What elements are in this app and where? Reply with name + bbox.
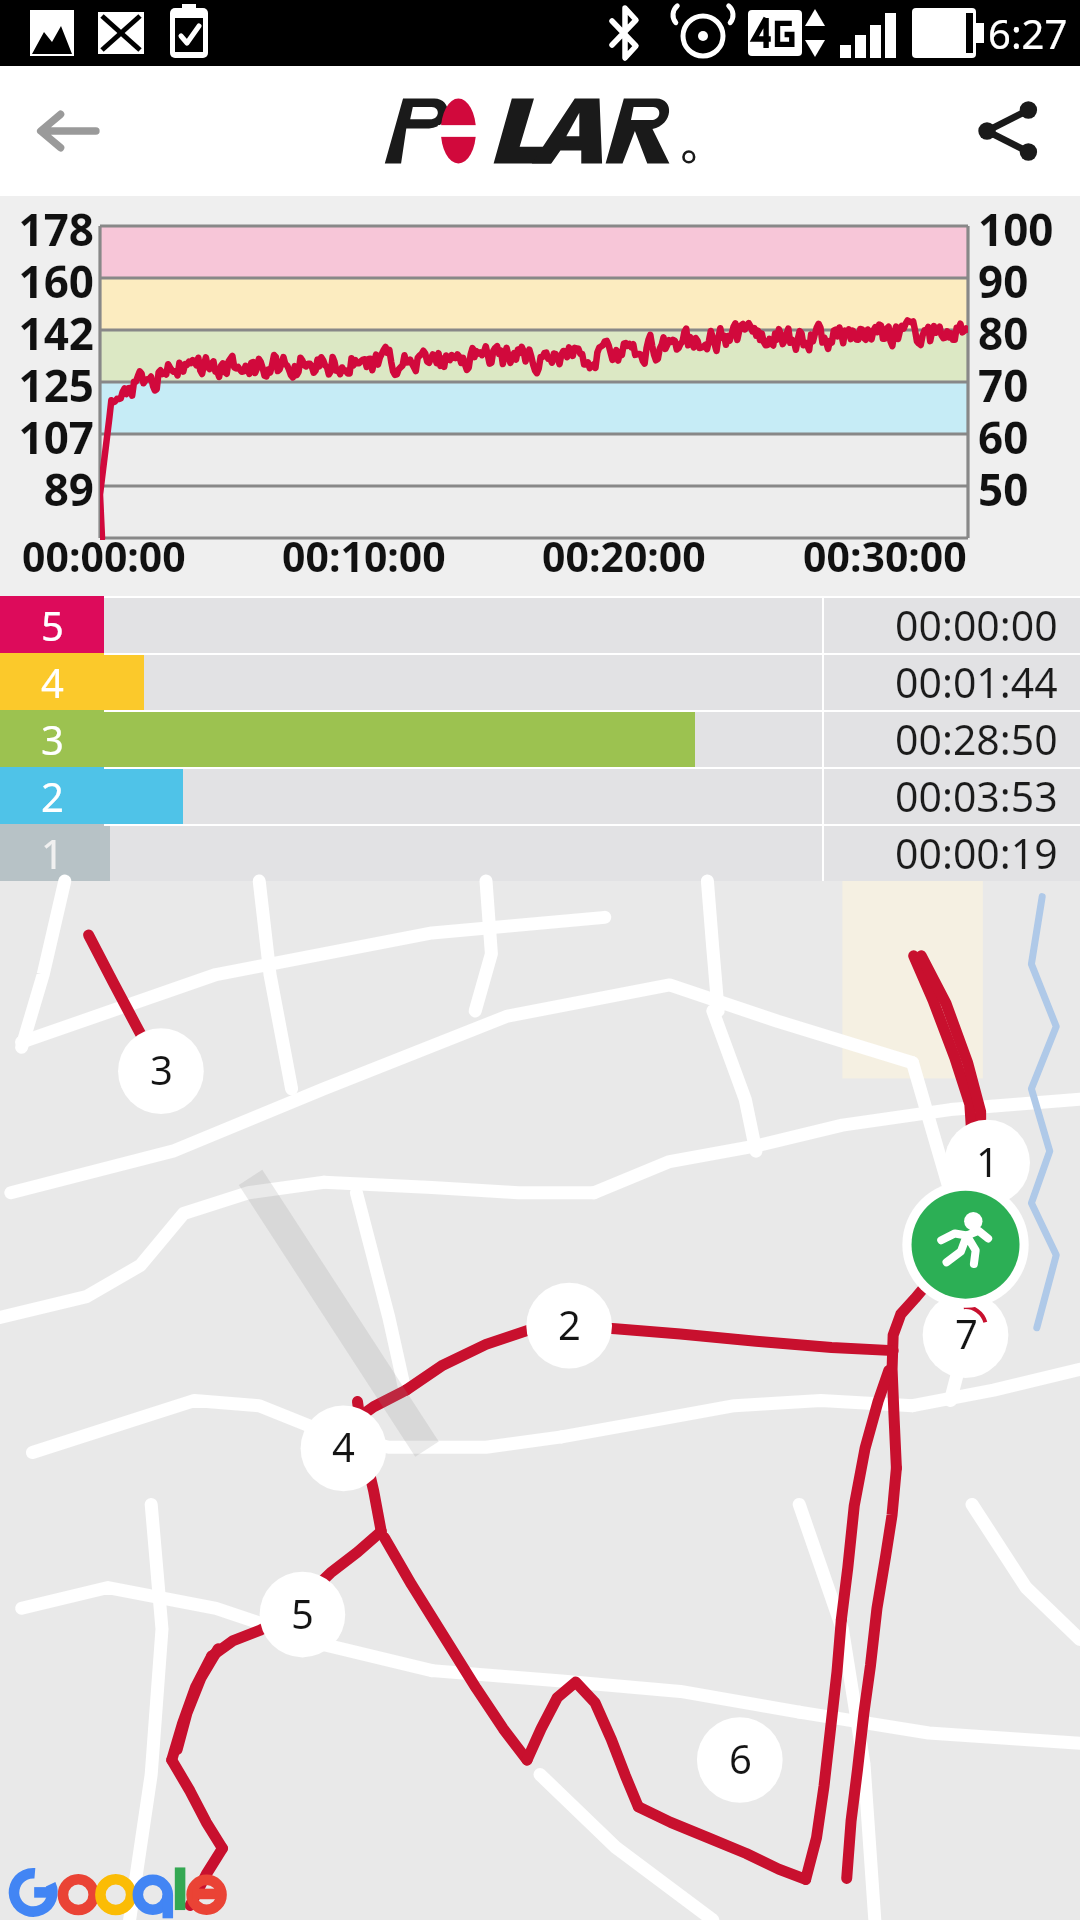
staticText: 7 (955, 1306, 978, 1360)
staticText: 2 (41, 769, 64, 823)
staticText: 5 (41, 598, 64, 652)
staticText: 3 (150, 1042, 173, 1096)
staticText: 1 (41, 826, 64, 880)
staticText: 1 (976, 1134, 999, 1188)
staticText: 160 (0, 251, 94, 311)
staticText: 00:30:00 (803, 528, 967, 584)
button[interactable]: 3 (0, 881, 1080, 1920)
staticText: 60 (978, 407, 1078, 467)
button[interactable]: Share (964, 87, 1052, 175)
staticText: 90 (978, 251, 1078, 311)
staticText: 00:20:00 (542, 528, 706, 584)
staticText: 50 (978, 459, 1078, 519)
staticText: 3 (41, 712, 64, 766)
button[interactable]: 2 (0, 767, 1080, 824)
button[interactable]: 1 (0, 824, 1080, 881)
staticText: 100 (978, 199, 1078, 259)
staticText: 00:10:00 (282, 528, 446, 584)
staticText: 00:01:44 (895, 654, 1058, 710)
staticText: 6 (729, 1731, 752, 1785)
button[interactable]: 3 (0, 710, 1080, 767)
staticText: 4 (332, 1419, 355, 1473)
staticText: 00:00:00 (22, 528, 186, 584)
staticText: 4 (41, 655, 64, 709)
staticText: 80 (978, 303, 1078, 363)
staticText: 89 (0, 459, 94, 519)
staticText: 107 (0, 407, 94, 467)
staticText: 70 (978, 355, 1078, 415)
staticText: 00:03:53 (895, 768, 1058, 824)
button[interactable]: 5 (0, 596, 1080, 653)
staticText: 00:28:50 (895, 711, 1058, 767)
staticText: 125 (0, 355, 94, 415)
button[interactable]: Back (24, 87, 112, 175)
button[interactable]: 4 (0, 653, 1080, 710)
staticText: 142 (0, 303, 94, 363)
staticText: 2 (558, 1297, 581, 1351)
staticText: 178 (0, 199, 94, 259)
staticText: 00:00:19 (895, 825, 1058, 881)
staticText: 5 (291, 1586, 314, 1640)
staticText: 00:00:00 (895, 597, 1058, 653)
staticText: 6:27 (988, 6, 1068, 60)
